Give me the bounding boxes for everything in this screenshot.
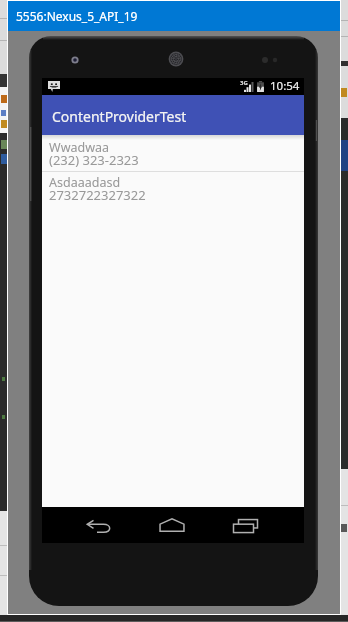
button[interactable]: 5556:Nexus_5_API_19 [8,1,340,31]
staticText: 5556:Nexus_5_API_19 [16,8,138,24]
button[interactable]: Recent apps [202,507,304,543]
staticText: 10:54 [270,78,300,94]
button[interactable]: Wwadwaa [42,135,304,171]
staticText: Wwadwaa [49,139,110,156]
button[interactable]: ContentProviderTest [42,95,304,135]
staticText: Asdaaadasd [49,174,121,191]
button[interactable]: Back [42,507,130,543]
staticText: ContentProviderTest [52,107,187,126]
button[interactable]: Asdaaadasd [42,172,304,208]
staticText: 2732722327322 [49,186,146,204]
staticText: 3G [240,79,248,87]
button[interactable]: Home [130,507,202,543]
staticText: (232) 323-2323 [49,151,139,169]
